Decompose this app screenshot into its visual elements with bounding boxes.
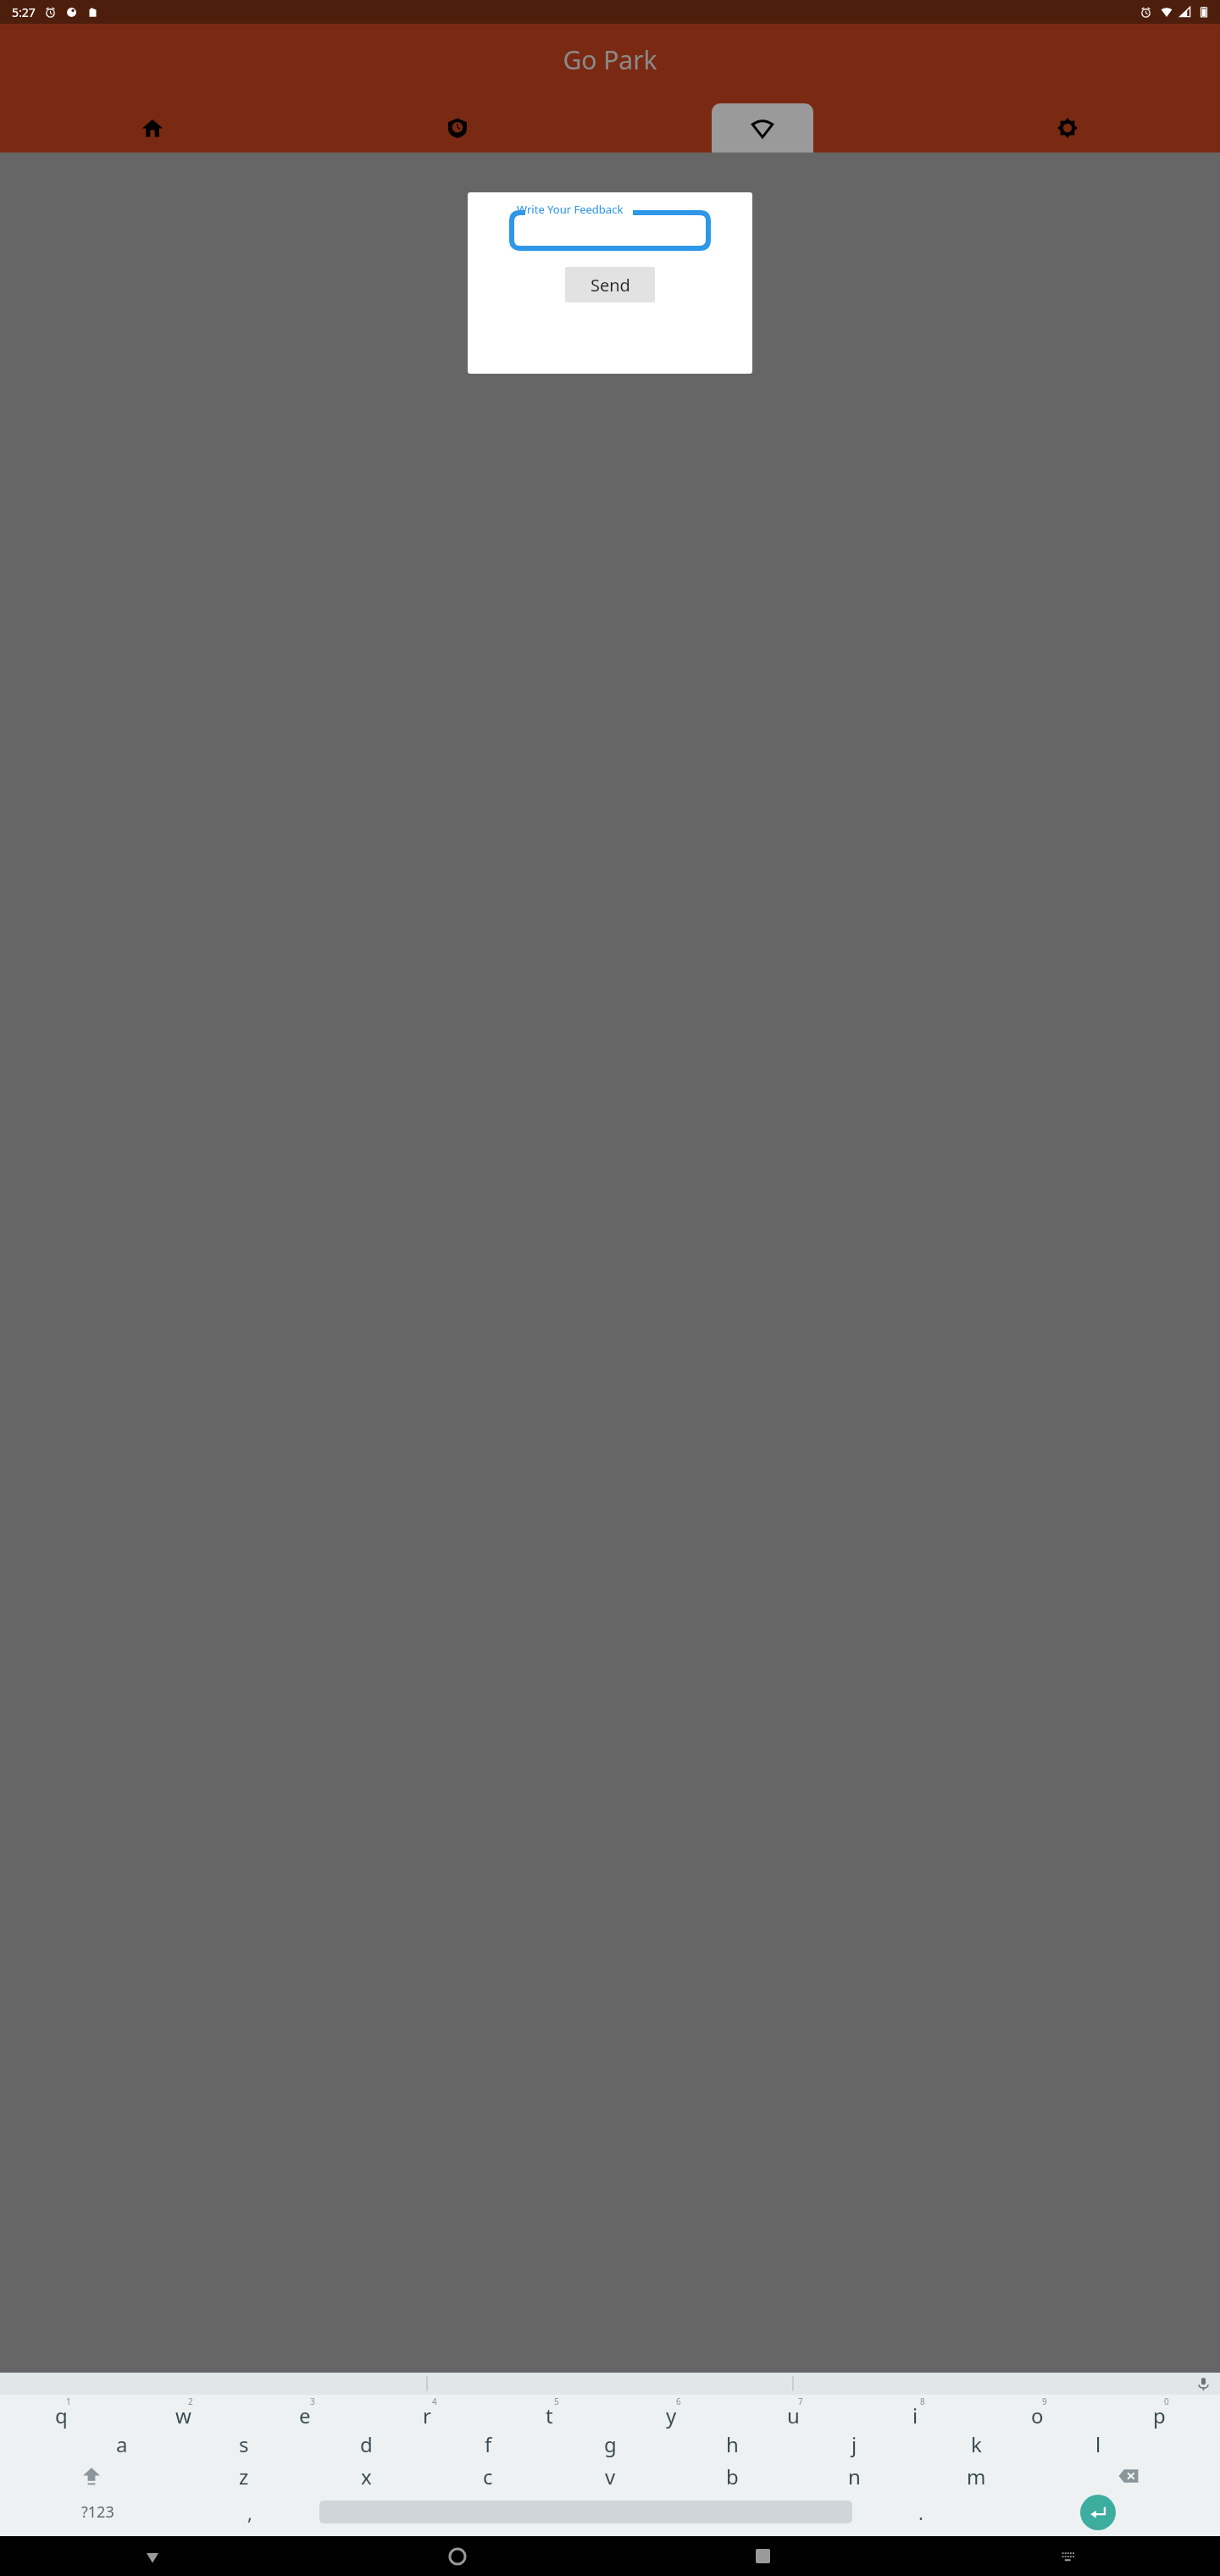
staticText: 9 [1042, 2396, 1047, 2407]
button[interactable]: Settings [915, 103, 1220, 153]
staticText: , [247, 2500, 252, 2525]
staticText: 6 [676, 2396, 681, 2407]
button[interactable]: 3 [244, 2395, 366, 2428]
button[interactable]: Space [305, 2492, 866, 2532]
button[interactable]: b [671, 2460, 793, 2492]
staticText: 3 [310, 2396, 315, 2407]
button[interactable]: s [183, 2428, 305, 2460]
staticText: y [666, 2401, 677, 2429]
button[interactable]: Recents [610, 2536, 915, 2576]
button[interactable]: 9 [976, 2395, 1098, 2428]
staticText: h [726, 2430, 739, 2458]
staticText: r [423, 2401, 431, 2429]
staticText: t [546, 2401, 553, 2429]
staticText: x [361, 2462, 372, 2490]
staticText: 5 [554, 2396, 559, 2407]
staticText: ?123 [81, 2501, 114, 2523]
button[interactable]: 1 [0, 2395, 122, 2428]
button[interactable]: Home [0, 103, 305, 153]
staticText: a [116, 2430, 128, 2458]
button[interactable]: ?123 [0, 2492, 195, 2532]
button[interactable]: z [183, 2460, 305, 2492]
button[interactable]: 8 [854, 2395, 976, 2428]
staticText: g [604, 2430, 617, 2458]
staticText: u [787, 2401, 800, 2429]
staticText: j [851, 2430, 857, 2458]
button[interactable]: Security [305, 103, 610, 153]
staticText: k [971, 2430, 982, 2458]
staticText: 8 [920, 2396, 925, 2407]
staticText: Write Your Feedback [517, 202, 624, 217]
button[interactable]: 6 [610, 2395, 732, 2428]
button[interactable]: . [866, 2492, 976, 2532]
button[interactable]: 0 [1098, 2395, 1220, 2428]
button[interactable]: h [671, 2428, 793, 2460]
staticText: p [1153, 2401, 1166, 2429]
staticText: d [360, 2430, 373, 2458]
button[interactable]: g [549, 2428, 671, 2460]
staticText: 0 [1164, 2396, 1169, 2407]
button[interactable]: Shift [0, 2460, 183, 2492]
staticText: m [967, 2462, 986, 2490]
staticText: n [848, 2462, 861, 2490]
staticText: v [605, 2462, 616, 2490]
button[interactable]: 2 [122, 2395, 244, 2428]
button[interactable]: , [195, 2492, 305, 2532]
button[interactable]: Backspace [1037, 2460, 1220, 2492]
button[interactable]: Enter [976, 2492, 1220, 2532]
staticText: 7 [798, 2396, 803, 2407]
button[interactable]: n [793, 2460, 915, 2492]
staticText: f [485, 2430, 492, 2458]
staticText: 4 [432, 2396, 437, 2407]
staticText: o [1031, 2401, 1044, 2429]
button[interactable]: Back [0, 2536, 305, 2576]
button[interactable]: Write Your Feedback [512, 208, 708, 248]
button[interactable]: k [915, 2428, 1037, 2460]
staticText: e [299, 2401, 311, 2429]
staticText: Go Park [563, 42, 657, 77]
button[interactable]: 5 [488, 2395, 610, 2428]
button[interactable]: Home [305, 2536, 610, 2576]
button[interactable]: Network [610, 103, 915, 153]
button[interactable]: a [61, 2428, 183, 2460]
staticText: c [483, 2462, 493, 2490]
button[interactable]: m [915, 2460, 1037, 2492]
staticText: 2 [188, 2396, 193, 2407]
staticText: . [918, 2500, 923, 2525]
button[interactable]: x [305, 2460, 427, 2492]
button[interactable]: Switch keyboard [915, 2536, 1220, 2576]
button[interactable]: Send [565, 267, 655, 303]
staticText: z [239, 2462, 249, 2490]
button[interactable]: c [427, 2460, 549, 2492]
staticText: q [55, 2401, 68, 2429]
button[interactable]: d [305, 2428, 427, 2460]
staticText: 5:27 [12, 4, 36, 20]
button[interactable]: j [793, 2428, 915, 2460]
button[interactable]: 7 [732, 2395, 854, 2428]
button[interactable]: f [427, 2428, 549, 2460]
staticText: s [239, 2430, 249, 2458]
staticText: l [1095, 2430, 1101, 2458]
staticText: i [912, 2401, 918, 2429]
button[interactable]: 4 [366, 2395, 488, 2428]
staticText: b [726, 2462, 739, 2490]
staticText: 1 [66, 2396, 71, 2407]
button[interactable]: v [549, 2460, 671, 2492]
button[interactable]: l [1037, 2428, 1159, 2460]
staticText: Send [591, 274, 630, 297]
button[interactable]: Voice input [1193, 2373, 1213, 2394]
staticText: w [175, 2401, 191, 2429]
